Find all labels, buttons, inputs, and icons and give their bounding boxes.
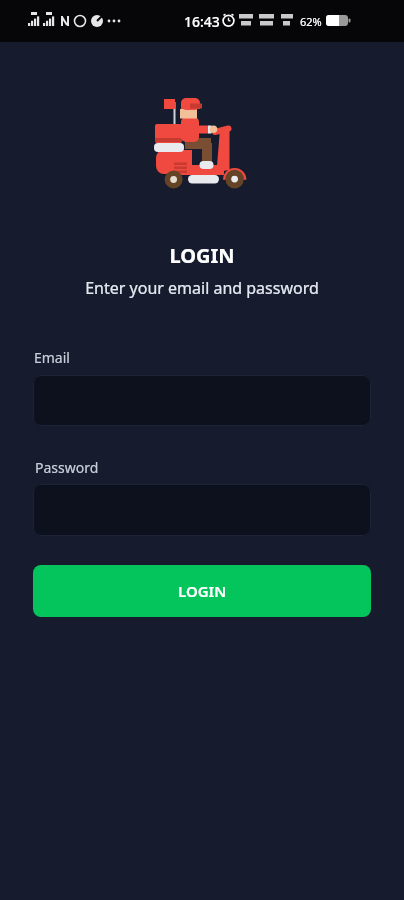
button[interactable] bbox=[33, 484, 371, 536]
button[interactable]: LOGIN bbox=[33, 565, 371, 617]
button[interactable] bbox=[33, 375, 371, 426]
staticText: 16:43 bbox=[184, 12, 220, 31]
staticText: 62% bbox=[300, 14, 322, 29]
staticText: Enter your email and password bbox=[0, 277, 404, 299]
staticText: LOGIN bbox=[178, 581, 227, 601]
staticText: Email bbox=[34, 348, 70, 367]
staticText: Password bbox=[35, 458, 99, 477]
staticText: LOGIN bbox=[0, 242, 404, 269]
